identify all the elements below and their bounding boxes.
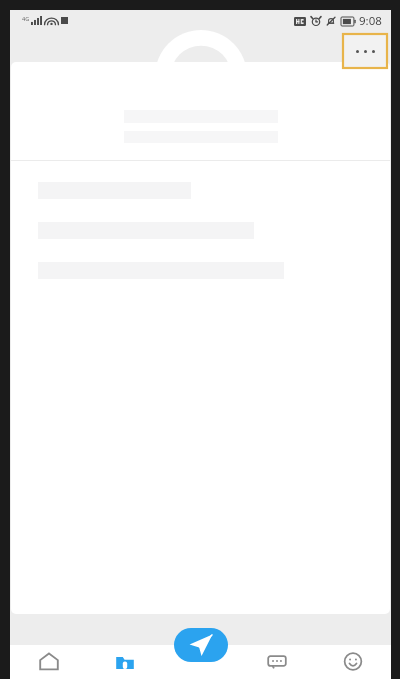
button[interactable]: Send	[174, 628, 228, 662]
button[interactable]: Folder	[87, 645, 163, 679]
staticText: 9:08	[359, 13, 382, 29]
button[interactable]: Send	[163, 645, 239, 679]
staticText: 4G	[22, 15, 30, 22]
button[interactable]: Home	[10, 645, 87, 679]
button[interactable]: Messages	[239, 645, 315, 679]
button[interactable]: Profile	[315, 645, 391, 679]
button[interactable]: More options	[343, 34, 387, 68]
